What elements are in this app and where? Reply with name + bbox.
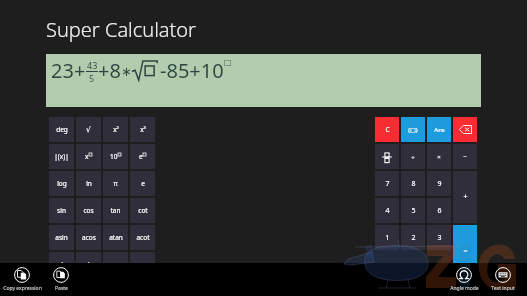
staticText: 10 — [110, 152, 118, 161]
staticText: (□) — [408, 126, 418, 134]
staticText: × — [437, 153, 441, 161]
staticText: C — [385, 125, 390, 134]
staticText: √ — [86, 125, 91, 134]
button[interactable]: 4 — [375, 198, 399, 223]
staticText: 3 — [437, 233, 442, 243]
staticText: -85+10 — [160, 57, 224, 84]
button[interactable]: Fraction — [375, 144, 399, 169]
button[interactable]: (□) — [401, 117, 425, 142]
staticText: acot — [136, 233, 150, 242]
button[interactable]: 23+ — [46, 54, 481, 107]
button[interactable]: Plus — [453, 171, 477, 223]
button[interactable]: Multiply — [427, 144, 451, 169]
staticText: 5 — [89, 72, 95, 84]
staticText: |(x)| — [54, 152, 69, 161]
staticText: log — [57, 179, 67, 188]
staticText: x³ — [140, 125, 146, 134]
staticText: − — [463, 153, 467, 161]
button[interactable]: Text input — [477, 263, 527, 296]
staticText: Super Calculator — [46, 16, 196, 43]
staticText: 9 — [437, 179, 442, 189]
button[interactable]: acos — [76, 225, 101, 250]
button[interactable]: C — [375, 117, 399, 142]
staticText: + — [463, 192, 468, 202]
button[interactable]: Paste — [35, 263, 87, 296]
staticText: atan — [109, 233, 123, 242]
staticText: 6 — [437, 206, 442, 216]
staticText: ∗ — [121, 64, 132, 79]
staticText: ÷ — [411, 153, 415, 161]
button[interactable]: acot — [130, 225, 155, 250]
button[interactable]: Equals — [453, 225, 477, 277]
button[interactable]: Angle mode — [438, 263, 490, 296]
button[interactable]: 7 — [375, 171, 399, 196]
staticText: → — [140, 261, 146, 269]
staticText: +8 — [98, 57, 121, 84]
button[interactable]: x — [76, 144, 101, 169]
button[interactable]: → — [130, 252, 155, 277]
staticText: tan — [110, 206, 121, 215]
button[interactable]: x³ — [130, 117, 155, 142]
staticText: 1 — [385, 233, 390, 243]
staticText: Paste — [55, 285, 68, 292]
staticText: sin — [57, 206, 66, 215]
button[interactable]: e — [130, 144, 155, 169]
button[interactable]: π — [103, 171, 128, 196]
staticText: ) — [88, 260, 90, 269]
button[interactable]: 9 — [427, 171, 451, 196]
button[interactable]: ) — [76, 252, 101, 277]
staticText: 5 — [411, 206, 416, 216]
button[interactable]: cot — [130, 198, 155, 223]
button[interactable]: 5 — [401, 198, 425, 223]
button[interactable]: Backspace — [453, 117, 477, 142]
staticText: Copy expression — [3, 285, 42, 292]
button[interactable]: cos — [76, 198, 101, 223]
button[interactable]: √ — [76, 117, 101, 142]
button[interactable]: log — [49, 171, 74, 196]
button[interactable]: 1 — [375, 225, 399, 250]
button[interactable]: x² — [103, 117, 128, 142]
staticText: ← — [113, 261, 119, 269]
staticText: ( — [61, 260, 63, 269]
button[interactable]: Minus — [453, 144, 477, 169]
staticText: 8 — [411, 179, 416, 189]
button[interactable]: ln — [76, 171, 101, 196]
staticText: 2 — [411, 233, 416, 243]
staticText: cos — [83, 206, 94, 215]
staticText: Angle mode — [450, 285, 479, 292]
staticText: = — [463, 246, 468, 256]
staticText: ln — [86, 179, 92, 188]
button[interactable]: 10 — [103, 144, 128, 169]
staticText: cot — [138, 206, 148, 215]
button[interactable]: 3 — [427, 225, 451, 250]
button[interactable]: 8 — [401, 171, 425, 196]
button[interactable]: e — [130, 171, 155, 196]
button[interactable]: atan — [103, 225, 128, 250]
staticText: 43 — [87, 59, 98, 71]
button[interactable]: Ans — [427, 117, 451, 142]
staticText: asin — [55, 233, 68, 242]
button[interactable]: 6 — [427, 198, 451, 223]
staticText: 23+ — [51, 57, 86, 84]
button[interactable]: Copy expression — [0, 263, 48, 296]
button[interactable]: sin — [49, 198, 74, 223]
staticText: x² — [113, 125, 119, 134]
button[interactable]: deg — [49, 117, 74, 142]
staticText: π — [113, 179, 118, 188]
button[interactable]: ( — [49, 252, 74, 277]
staticText: e — [141, 179, 145, 188]
staticText: Text input — [491, 285, 515, 292]
button[interactable]: tan — [103, 198, 128, 223]
staticText: Ans — [434, 126, 445, 134]
button[interactable]: Divide — [401, 144, 425, 169]
button[interactable]: asin — [49, 225, 74, 250]
staticText: acos — [82, 233, 96, 242]
staticText: 4 — [385, 206, 390, 216]
staticText: deg — [56, 125, 68, 134]
button[interactable]: ← — [103, 252, 128, 277]
staticText: 7 — [385, 179, 390, 189]
staticText: □ — [224, 58, 232, 67]
staticText: e — [139, 152, 143, 161]
button[interactable]: 2 — [401, 225, 425, 250]
button[interactable]: |(x)| — [49, 144, 74, 169]
